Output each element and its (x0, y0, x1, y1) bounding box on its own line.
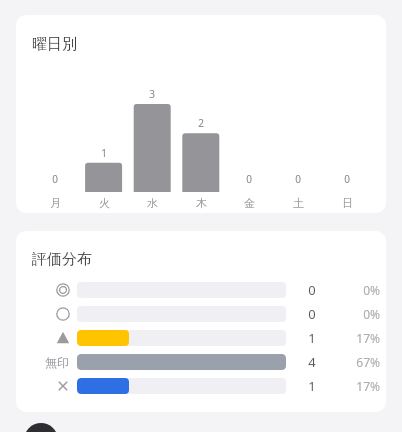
staticText: 1 (308, 329, 316, 347)
staticText: 3 (149, 87, 155, 101)
staticText: 0 (344, 172, 350, 186)
button[interactable]: 0 (16, 278, 386, 302)
staticText: 67% (356, 354, 380, 370)
staticText: 0 (308, 281, 316, 299)
staticText: 2 (198, 116, 204, 130)
button[interactable]: 0 (16, 302, 386, 326)
staticText: 曜日別 (32, 35, 77, 54)
staticText: 火 (99, 196, 110, 210)
button[interactable]: 無印 (16, 350, 386, 374)
staticText: 1 (308, 377, 316, 395)
staticText: 0 (295, 172, 301, 186)
staticText: 0 (246, 172, 252, 186)
staticText: 0% (363, 306, 380, 322)
staticText: 木 (196, 196, 207, 210)
staticText: 金 (244, 196, 255, 210)
staticText: 日 (342, 196, 353, 210)
staticText: 1 (101, 146, 107, 160)
staticText: 水 (147, 196, 158, 210)
staticText: 評価分布 (32, 250, 92, 269)
button[interactable]: 1 (16, 326, 386, 350)
staticText: 無印 (45, 355, 69, 370)
button[interactable]: 1 (16, 374, 386, 398)
staticText: 0 (308, 305, 316, 323)
staticText: 0% (363, 282, 380, 298)
staticText: 17% (356, 378, 380, 394)
staticText: 月 (50, 196, 61, 210)
staticText: 土 (293, 196, 304, 210)
staticText: 17% (356, 330, 380, 346)
staticText: 0 (52, 172, 58, 186)
button[interactable]: Add (24, 423, 58, 432)
staticText: 4 (308, 353, 316, 371)
